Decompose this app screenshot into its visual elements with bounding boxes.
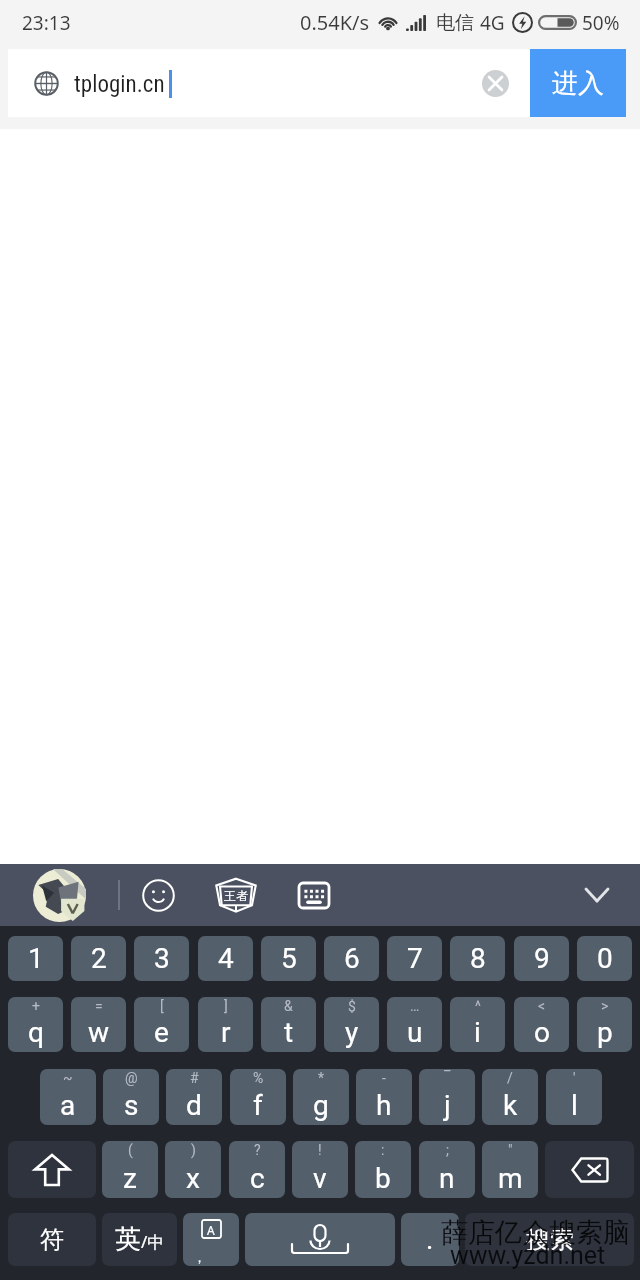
staticText: c bbox=[250, 1162, 265, 1195]
button[interactable]: " bbox=[482, 1141, 538, 1198]
button[interactable]: ( bbox=[102, 1141, 158, 1198]
staticText: 9 bbox=[534, 942, 550, 975]
button[interactable]: ? bbox=[229, 1141, 285, 1198]
button[interactable]: . bbox=[401, 1213, 459, 1266]
staticText: ~ bbox=[63, 1070, 73, 1086]
staticText: www.yzdn.net bbox=[450, 1241, 606, 1270]
button[interactable]: # bbox=[166, 1069, 222, 1125]
staticText: m bbox=[498, 1162, 523, 1195]
button[interactable]: 英 bbox=[102, 1213, 177, 1266]
button[interactable]: ! bbox=[292, 1141, 348, 1198]
button[interactable]: ; bbox=[419, 1141, 475, 1198]
staticText: A bbox=[207, 1222, 215, 1238]
button[interactable]: ‾ bbox=[419, 1069, 475, 1125]
button[interactable]: Keyboard layout bbox=[294, 875, 334, 915]
button[interactable]: 8 bbox=[450, 936, 505, 981]
staticText: 电信 bbox=[436, 11, 474, 35]
staticText: a bbox=[60, 1089, 76, 1122]
button[interactable]: - bbox=[356, 1069, 412, 1125]
staticText: ( bbox=[128, 1142, 133, 1158]
button[interactable]: Emoji bbox=[138, 875, 178, 915]
button[interactable]: $ bbox=[324, 997, 379, 1052]
staticText: 4G bbox=[480, 10, 505, 36]
staticText: ‾ bbox=[444, 1070, 451, 1086]
staticText: v bbox=[313, 1162, 327, 1195]
staticText: 6 bbox=[344, 942, 360, 975]
staticText: @ bbox=[125, 1070, 138, 1086]
staticText: d bbox=[186, 1089, 202, 1122]
staticText: 进入 bbox=[552, 67, 604, 100]
button[interactable]: shift bbox=[8, 1141, 96, 1198]
staticText: ) bbox=[191, 1142, 196, 1158]
button[interactable]: * bbox=[293, 1069, 349, 1125]
staticText: # bbox=[190, 1070, 199, 1086]
staticText: u bbox=[407, 1016, 423, 1049]
button[interactable]: 符 bbox=[8, 1213, 96, 1266]
button[interactable]: @ bbox=[103, 1069, 159, 1125]
button[interactable]: 7 bbox=[387, 936, 442, 981]
staticText: 王者 bbox=[224, 888, 248, 903]
button[interactable]: % bbox=[230, 1069, 286, 1125]
staticText: o bbox=[534, 1016, 550, 1049]
staticText: % bbox=[253, 1070, 264, 1086]
staticText: e bbox=[154, 1016, 169, 1049]
button[interactable]: ' bbox=[546, 1069, 602, 1125]
button[interactable]: del bbox=[545, 1141, 634, 1198]
button[interactable]: 6 bbox=[324, 936, 379, 981]
staticText: j bbox=[444, 1089, 451, 1122]
staticText: r bbox=[221, 1016, 231, 1049]
staticText: h bbox=[376, 1089, 392, 1122]
staticText: + bbox=[32, 998, 40, 1014]
staticText: 搜索 bbox=[526, 1225, 574, 1255]
staticText: … bbox=[410, 998, 420, 1014]
button[interactable]: 4 bbox=[198, 936, 253, 981]
button[interactable]: … bbox=[387, 997, 442, 1052]
button[interactable]: / bbox=[482, 1069, 538, 1125]
staticText: l bbox=[571, 1089, 578, 1122]
staticText: " bbox=[508, 1142, 513, 1158]
staticText: 0.54K/s bbox=[300, 9, 370, 36]
staticText: * bbox=[318, 1070, 325, 1086]
staticText: 50% bbox=[582, 10, 620, 36]
button[interactable]: ~ bbox=[40, 1069, 96, 1125]
button[interactable]: ) bbox=[165, 1141, 221, 1198]
staticText: 4 bbox=[218, 942, 234, 975]
button[interactable]: [ bbox=[134, 997, 189, 1052]
staticText: w bbox=[88, 1016, 110, 1049]
staticText: b bbox=[375, 1162, 391, 1195]
button[interactable]: > bbox=[577, 997, 632, 1052]
button[interactable]: < bbox=[514, 997, 569, 1052]
button[interactable]: = bbox=[71, 997, 126, 1052]
button[interactable]: Game sticker bbox=[215, 878, 257, 912]
button[interactable]: 搜索 bbox=[465, 1213, 634, 1266]
button[interactable]: lang bbox=[183, 1213, 239, 1266]
button[interactable]: Clear text bbox=[482, 70, 509, 97]
button[interactable]: 9 bbox=[514, 936, 569, 981]
staticText: n bbox=[439, 1162, 455, 1195]
staticText: [ bbox=[160, 998, 164, 1014]
button[interactable]: 进入 bbox=[530, 49, 626, 117]
button[interactable]: 1 bbox=[8, 936, 63, 981]
button[interactable]: 0 bbox=[577, 936, 632, 981]
button[interactable]: 3 bbox=[134, 936, 189, 981]
staticText: ， bbox=[193, 1249, 206, 1265]
button[interactable]: space bbox=[245, 1213, 395, 1266]
button[interactable]: Hide keyboard bbox=[573, 871, 621, 919]
staticText: z bbox=[123, 1162, 137, 1195]
staticText: t bbox=[284, 1016, 294, 1049]
button[interactable]: tplogin.cn bbox=[8, 49, 530, 117]
button[interactable]: & bbox=[261, 997, 316, 1052]
button[interactable]: 2 bbox=[71, 936, 126, 981]
button[interactable]: 5 bbox=[261, 936, 316, 981]
staticText: ^ bbox=[475, 998, 481, 1014]
button[interactable]: : bbox=[355, 1141, 411, 1198]
staticText: 0 bbox=[597, 942, 613, 975]
staticText: 1 bbox=[28, 942, 44, 975]
staticText: ? bbox=[254, 1142, 261, 1158]
button[interactable]: ] bbox=[198, 997, 253, 1052]
staticText: g bbox=[313, 1089, 329, 1122]
staticText: < bbox=[538, 998, 546, 1014]
button[interactable]: Profile bbox=[33, 869, 86, 922]
button[interactable]: ^ bbox=[450, 997, 505, 1052]
button[interactable]: + bbox=[8, 997, 63, 1052]
